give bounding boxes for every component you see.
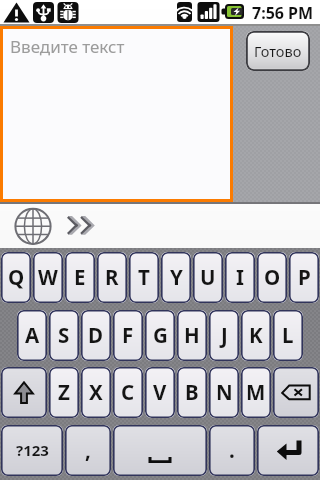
button[interactable]: L (273, 310, 303, 361)
button[interactable]: B (177, 367, 207, 418)
button[interactable]: G (145, 310, 175, 361)
staticText: Y (170, 263, 183, 291)
button[interactable]: ?123 (1, 425, 63, 476)
button[interactable]: Введите текст (0, 26, 233, 202)
button[interactable]: T (129, 252, 159, 303)
staticText: Введите текст (10, 35, 125, 58)
button[interactable]: Готово (246, 31, 310, 71)
button[interactable]: R (97, 252, 127, 303)
staticText: F (122, 321, 134, 349)
staticText: U (200, 263, 216, 291)
button[interactable]: D (81, 310, 111, 361)
button[interactable]: A (17, 310, 47, 361)
button[interactable]: O (257, 252, 287, 303)
staticText: H (184, 321, 200, 349)
button[interactable]: C (113, 367, 143, 418)
staticText: 7:56 PM (252, 2, 314, 24)
staticText: M (246, 378, 266, 406)
staticText: E (74, 263, 86, 291)
button[interactable]: Y (161, 252, 191, 303)
staticText: , (85, 436, 91, 464)
button[interactable]: Z (49, 367, 79, 418)
staticText: Готово (254, 41, 302, 61)
staticText: C (121, 378, 135, 406)
staticText: X (89, 378, 103, 406)
button[interactable]: , (65, 425, 111, 476)
staticText: S (58, 321, 70, 349)
staticText: G (153, 321, 168, 349)
button[interactable]: X (81, 367, 111, 418)
button[interactable]: E (65, 252, 95, 303)
staticText: R (105, 263, 119, 291)
button[interactable]: . (209, 425, 255, 476)
staticText: W (38, 263, 58, 291)
button[interactable]: P (289, 252, 319, 303)
button[interactable]: Enter (257, 425, 319, 476)
staticText: N (216, 378, 233, 406)
staticText: Z (58, 378, 70, 406)
button[interactable]: N (209, 367, 239, 418)
staticText: O (264, 263, 281, 291)
button[interactable]: K (241, 310, 271, 361)
button[interactable]: U (193, 252, 223, 303)
button[interactable]: H (177, 310, 207, 361)
button[interactable]: V (145, 367, 175, 418)
staticText: A (25, 321, 40, 349)
staticText: K (249, 321, 263, 349)
staticText: B (185, 378, 199, 406)
staticText: P (298, 263, 311, 291)
button[interactable]: W (33, 252, 63, 303)
button[interactable]: Delete (273, 367, 319, 418)
button[interactable]: M (241, 367, 271, 418)
staticText: ?123 (16, 440, 49, 460)
staticText: D (88, 321, 104, 349)
staticText: L (282, 321, 294, 349)
staticText: T (138, 263, 150, 291)
staticText: V (153, 378, 167, 406)
staticText: I (236, 263, 244, 291)
button[interactable]: J (209, 310, 239, 361)
button[interactable]: Space (113, 425, 207, 476)
button[interactable]: I (225, 252, 255, 303)
staticText: Q (8, 263, 25, 291)
button[interactable]: Shift (1, 367, 47, 418)
staticText: J (221, 321, 228, 349)
button[interactable]: F (113, 310, 143, 361)
button[interactable]: Q (1, 252, 31, 303)
staticText: . (229, 436, 235, 464)
button[interactable]: S (49, 310, 79, 361)
